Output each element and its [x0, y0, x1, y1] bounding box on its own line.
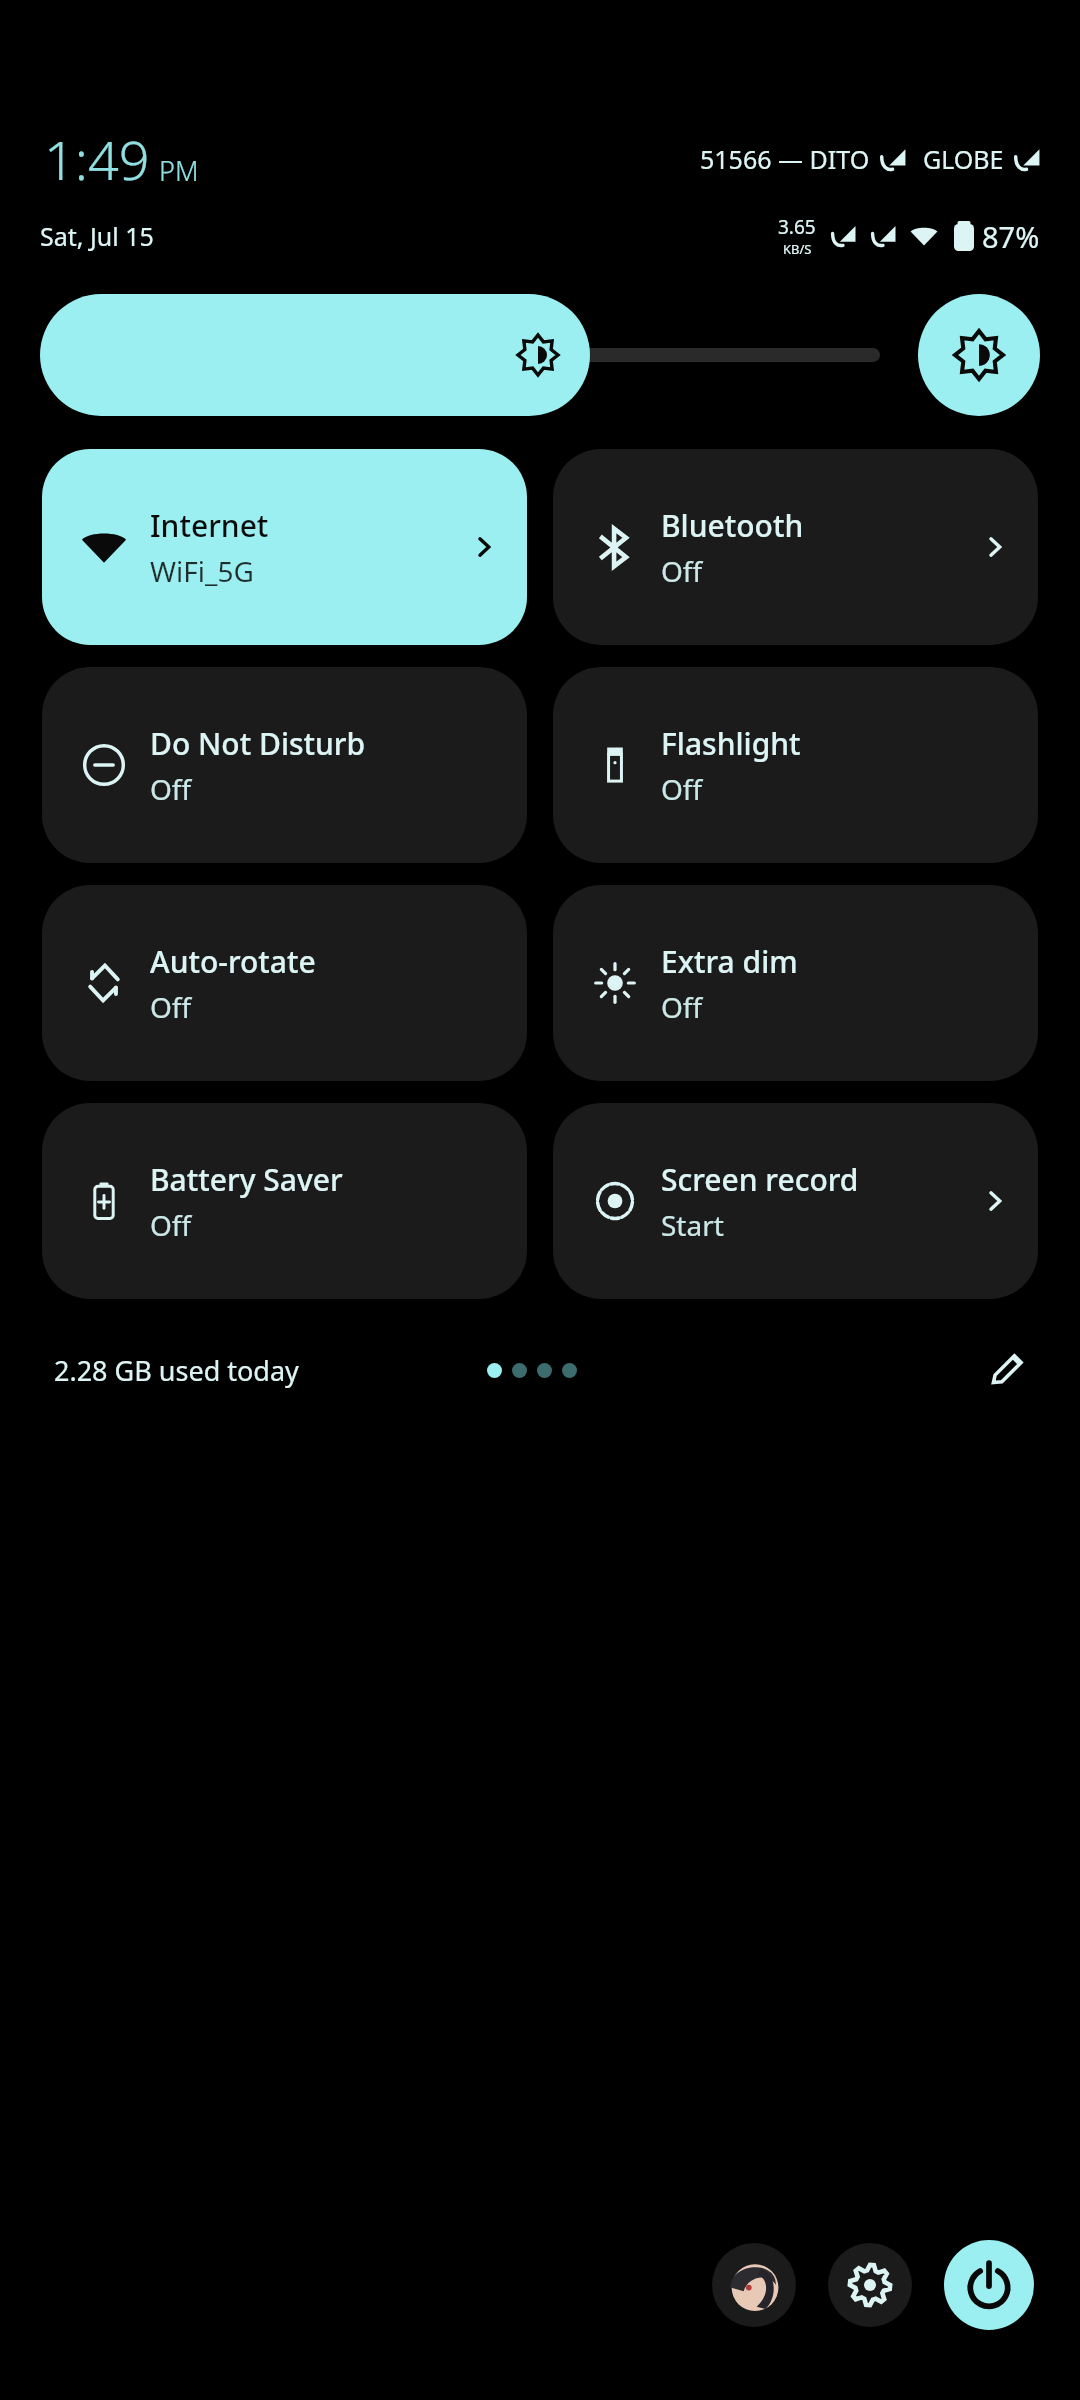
staticText: Off: [150, 988, 192, 1026]
staticText: Sat, Jul 15: [40, 219, 154, 253]
staticText: Off: [150, 1206, 192, 1244]
staticText: Do Not Disturb: [150, 723, 366, 764]
staticText: Off: [661, 552, 703, 590]
button[interactable]: 2.28 GB used today: [54, 1352, 299, 1389]
staticText: Extra dim: [661, 941, 798, 982]
staticText: KB/S: [783, 240, 812, 258]
staticText: Start: [661, 1206, 724, 1244]
button[interactable]: Flashlight: [553, 667, 1038, 863]
staticText: 87%: [982, 217, 1040, 256]
staticText: Off: [150, 770, 192, 808]
staticText: Internet: [150, 505, 269, 546]
staticText: 3.65: [778, 214, 816, 240]
staticText: Auto-rotate: [150, 941, 316, 982]
button[interactable]: Extra dim: [553, 885, 1038, 1081]
button[interactable]: Auto-rotate: [42, 885, 527, 1081]
button[interactable]: Battery Saver: [42, 1103, 527, 1299]
button[interactable]: Edit tiles: [978, 1342, 1034, 1398]
staticText: WiFi_5G: [150, 552, 254, 590]
button[interactable]: Settings: [828, 2243, 912, 2327]
staticText: Off: [661, 770, 703, 808]
staticText: 1:49: [44, 122, 150, 196]
button[interactable]: Do Not Disturb: [42, 667, 527, 863]
button[interactable]: Auto brightness: [918, 294, 1040, 416]
button[interactable]: Bluetooth: [553, 449, 1038, 645]
staticText: Screen record: [661, 1159, 859, 1200]
staticText: Bluetooth: [661, 505, 804, 546]
staticText: Flashlight: [661, 723, 801, 764]
button[interactable]: User account: [712, 2243, 796, 2327]
button[interactable]: [40, 294, 880, 416]
staticText: GLOBE: [923, 142, 1004, 176]
staticText: Off: [661, 988, 703, 1026]
staticText: PM: [159, 152, 199, 189]
staticText: 51566 — DITO: [700, 142, 870, 176]
staticText: Battery Saver: [150, 1159, 343, 1200]
button[interactable]: Power: [944, 2240, 1034, 2330]
button[interactable]: Screen record: [553, 1103, 1038, 1299]
button[interactable]: Internet: [42, 449, 527, 645]
